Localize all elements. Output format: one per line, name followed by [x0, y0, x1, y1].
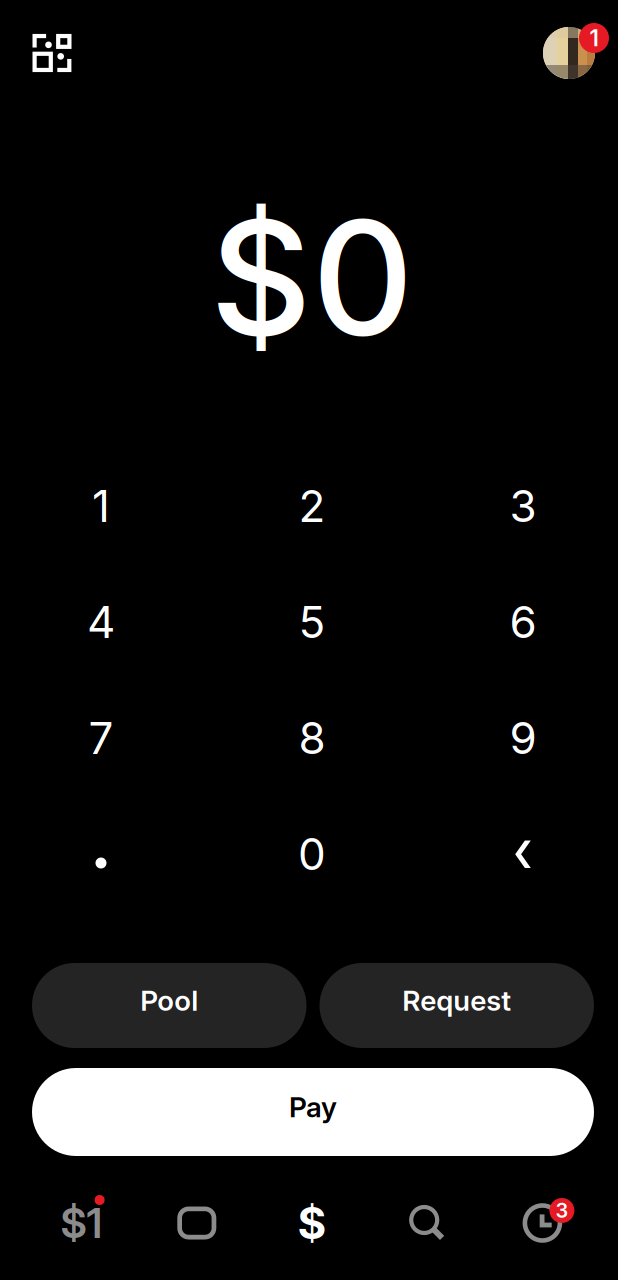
button[interactable]: 7 — [0, 680, 206, 796]
button[interactable]: Card — [139, 1193, 254, 1253]
button[interactable]: 1 — [0, 448, 206, 564]
staticText: 3 — [509, 479, 536, 533]
button[interactable]: Activity, 3 new — [485, 1193, 600, 1253]
button[interactable]: 3 — [417, 448, 618, 564]
button[interactable]: Scan QR code — [24, 25, 80, 81]
button[interactable]: Decimal point — [0, 796, 206, 912]
button[interactable]: Search — [370, 1193, 485, 1253]
button[interactable]: 5 — [206, 564, 417, 680]
staticText: 6 — [509, 595, 536, 649]
staticText: $0 — [210, 182, 414, 372]
button[interactable]: Request — [319, 963, 594, 1048]
button[interactable]: 2 — [206, 448, 417, 564]
staticText: 1 — [92, 479, 110, 533]
staticText: 3 — [555, 1198, 568, 1223]
button[interactable]: Pool — [32, 963, 306, 1048]
button[interactable]: 0 — [206, 796, 417, 912]
button[interactable]: 6 — [417, 564, 618, 680]
button[interactable]: 9 — [417, 680, 618, 796]
staticText: 4 — [87, 595, 115, 649]
button[interactable]: Payments — [254, 1193, 370, 1253]
button[interactable]: 4 — [0, 564, 206, 680]
button[interactable]: Money — [24, 1193, 139, 1253]
staticText: Pool — [140, 984, 198, 1017]
staticText: 2 — [298, 479, 325, 533]
staticText: Request — [402, 984, 511, 1017]
button[interactable]: Pay — [32, 1068, 594, 1156]
staticText: 5 — [298, 595, 325, 649]
staticText: 7 — [88, 711, 113, 765]
button[interactable]: Delete — [417, 796, 618, 912]
staticText: 1 — [589, 24, 598, 52]
button[interactable]: Profile, 1 new notification — [530, 22, 608, 84]
staticText: 9 — [509, 711, 536, 765]
staticText: $1 — [61, 1198, 103, 1248]
staticText: $ — [297, 1196, 326, 1250]
staticText: Pay — [289, 1090, 337, 1124]
staticText: 8 — [298, 711, 325, 765]
staticText: 0 — [298, 827, 326, 881]
button[interactable]: 8 — [206, 680, 417, 796]
